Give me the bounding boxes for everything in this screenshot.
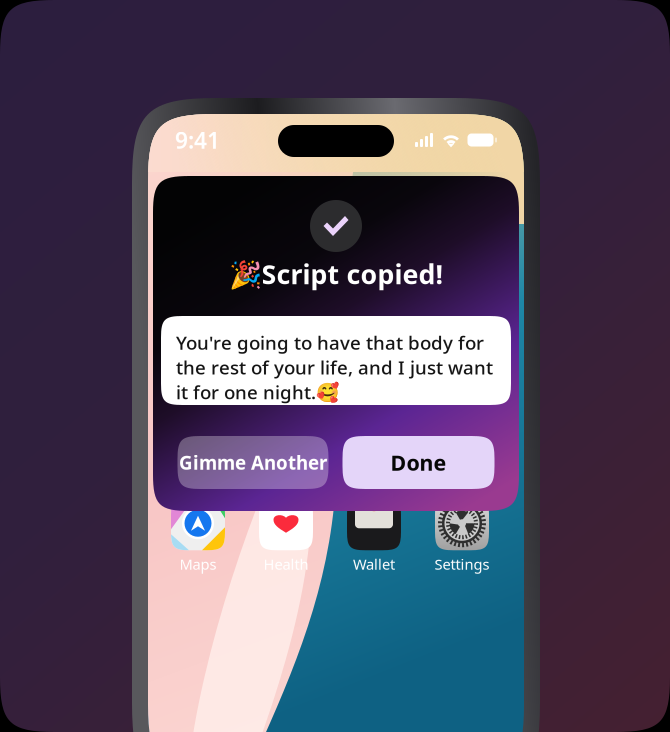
staticText: Done — [390, 448, 446, 477]
staticText: 🎉Script copied! — [228, 256, 443, 292]
staticText: You're going to have that body for the r… — [176, 330, 493, 404]
button[interactable]: Gimme Another — [177, 436, 328, 489]
staticText: Settings — [434, 554, 489, 574]
button[interactable]: Done — [342, 436, 494, 489]
staticText: 9:41 — [175, 125, 220, 155]
staticText: Health — [263, 554, 308, 574]
staticText: Wallet — [353, 554, 395, 574]
button[interactable]: Wallet — [330, 496, 418, 574]
staticText: Gimme Another — [179, 450, 327, 475]
button[interactable]: Health — [242, 496, 330, 574]
button[interactable]: Settings — [418, 496, 506, 574]
staticText: Maps — [179, 554, 216, 574]
button[interactable]: Maps — [154, 496, 242, 574]
